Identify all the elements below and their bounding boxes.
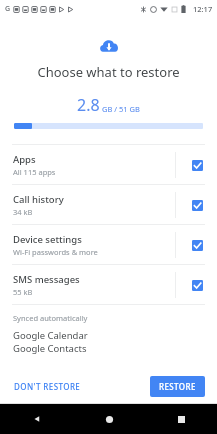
button[interactable]: Apps: [0, 145, 217, 184]
button[interactable]: Toggle Call history: [187, 195, 207, 215]
staticText: DON'T RESTORE: [14, 381, 81, 392]
button[interactable]: Toggle Apps: [187, 155, 207, 175]
staticText: Apps: [13, 153, 36, 166]
staticText: All 115 apps: [13, 167, 56, 177]
staticText: RESTORE: [159, 381, 196, 392]
staticText: 34 kB: [13, 207, 33, 217]
staticText: Google Contacts: [13, 342, 87, 355]
button[interactable]: Back: [0, 404, 73, 434]
staticText: 2.8: [77, 94, 100, 116]
button[interactable]: Device settings: [0, 225, 217, 264]
staticText: 12:17: [193, 4, 213, 14]
staticText: GB / 51 GB: [100, 104, 140, 114]
staticText: Choose what to restore: [37, 63, 180, 81]
button[interactable]: Recent apps: [145, 404, 217, 434]
staticText: Synced automatically: [13, 313, 88, 323]
button[interactable]: Call history: [0, 185, 217, 224]
button[interactable]: Toggle Device settings: [187, 235, 207, 255]
button[interactable]: SMS messages: [0, 265, 217, 304]
staticText: 55 kB: [13, 287, 33, 297]
button[interactable]: RESTORE: [150, 376, 205, 397]
staticText: Call history: [13, 193, 64, 206]
staticText: Google Calendar: [13, 329, 88, 342]
staticText: Device settings: [13, 233, 82, 246]
staticText: SMS messages: [13, 273, 80, 286]
button[interactable]: Toggle SMS messages: [187, 275, 207, 295]
staticText: Wi-Fi passwords & more: [13, 247, 98, 257]
button[interactable]: Home: [73, 404, 145, 434]
button[interactable]: DON'T RESTORE: [12, 377, 83, 396]
staticText: G: [5, 4, 11, 14]
